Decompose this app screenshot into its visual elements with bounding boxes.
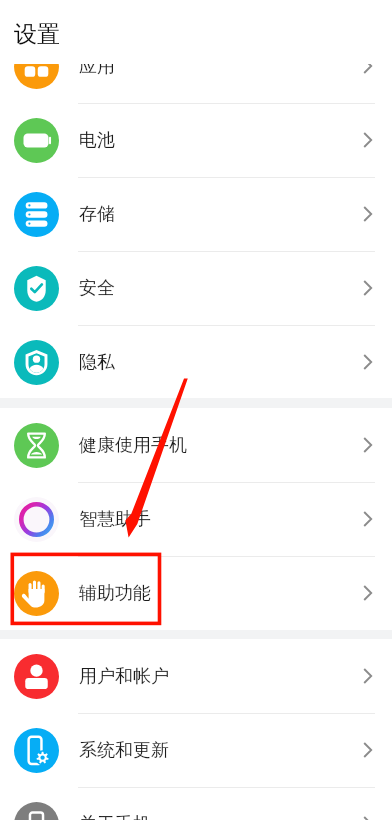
staticText: 系统和更新: [79, 739, 169, 762]
staticText: 电池: [79, 129, 115, 152]
staticText: 关于手机: [79, 813, 151, 820]
button[interactable]: 智慧助手: [0, 482, 392, 556]
staticText: 安全: [79, 277, 115, 300]
button[interactable]: 系统和更新: [0, 713, 392, 787]
staticText: 健康使用手机: [79, 434, 187, 457]
button[interactable]: 电池: [0, 103, 392, 177]
staticText: 设置: [14, 20, 60, 49]
button[interactable]: 辅助功能: [0, 556, 392, 630]
button[interactable]: 用户和帐户: [0, 639, 392, 713]
button[interactable]: 健康使用手机: [0, 408, 392, 482]
staticText: 智慧助手: [79, 508, 151, 531]
staticText: 辅助功能: [79, 582, 151, 605]
button[interactable]: 关于手机: [0, 787, 392, 820]
staticText: 隐私: [79, 351, 115, 374]
staticText: 用户和帐户: [79, 665, 169, 688]
button[interactable]: 安全: [0, 251, 392, 325]
button[interactable]: 应用: [0, 29, 392, 103]
staticText: 存储: [79, 203, 115, 226]
button[interactable]: 隐私: [0, 325, 392, 399]
staticText: 应用: [79, 55, 115, 78]
button[interactable]: 存储: [0, 177, 392, 251]
